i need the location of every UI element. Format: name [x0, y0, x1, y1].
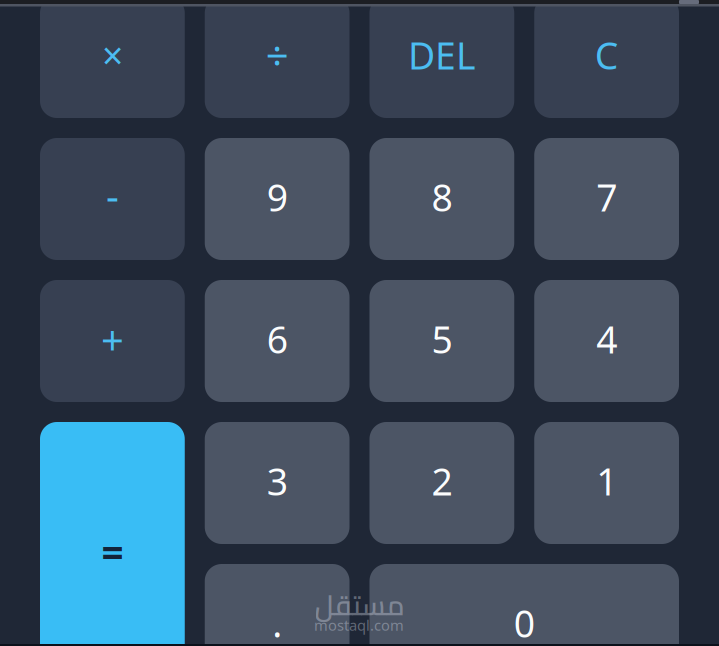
staticText: 1: [596, 456, 617, 506]
staticText: -: [106, 168, 119, 221]
staticText: مستقل: [314, 579, 404, 631]
staticText: 2: [431, 456, 452, 506]
button[interactable]: 9: [205, 138, 350, 260]
button[interactable]: 8: [369, 138, 514, 260]
staticText: DEL: [408, 30, 476, 80]
staticText: 5: [431, 314, 452, 364]
staticText: mostaql.com: [314, 615, 404, 635]
staticText: .: [272, 598, 282, 646]
button[interactable]: 0: [369, 564, 679, 646]
button[interactable]: Plus: [40, 280, 185, 402]
button[interactable]: Multiply: [40, 0, 185, 118]
staticText: ×: [102, 30, 123, 80]
staticText: +: [101, 312, 124, 365]
button[interactable]: Equals: [40, 422, 185, 646]
staticText: 0: [514, 598, 535, 646]
staticText: 9: [267, 172, 288, 222]
button[interactable]: 1: [534, 422, 679, 544]
staticText: ÷: [266, 28, 289, 81]
button[interactable]: Decimal point: [205, 564, 350, 646]
staticText: =: [101, 526, 123, 578]
staticText: C: [595, 30, 619, 80]
button[interactable]: 6: [205, 280, 350, 402]
button[interactable]: 5: [369, 280, 514, 402]
button[interactable]: Delete: [369, 0, 514, 118]
button[interactable]: Minus: [40, 138, 185, 260]
staticText: 8: [431, 172, 452, 222]
button[interactable]: Divide: [205, 0, 350, 118]
button[interactable]: 3: [205, 422, 350, 544]
button[interactable]: 7: [534, 138, 679, 260]
button[interactable]: 2: [369, 422, 514, 544]
staticText: 7: [596, 172, 617, 222]
staticText: 3: [267, 456, 288, 506]
staticText: 6: [267, 314, 288, 364]
staticText: 4: [596, 314, 617, 364]
button[interactable]: Clear: [534, 0, 679, 118]
button[interactable]: 4: [534, 280, 679, 402]
